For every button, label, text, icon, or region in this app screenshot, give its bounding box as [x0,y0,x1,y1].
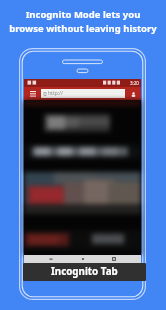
staticText: 3:20 [130,80,139,86]
button[interactable]: Recents [110,255,118,263]
button[interactable]: Home [79,255,87,263]
staticText: Incognito Tab [51,265,118,278]
button[interactable]: http:// [41,89,125,98]
button[interactable]: Account [129,90,137,98]
button[interactable]: Menu [29,90,37,98]
staticText: http:// [48,90,63,97]
button[interactable]: Incognito Tab [23,263,146,281]
button[interactable]: Back [47,255,55,263]
staticText: Incognito Mode lets you browse without l… [0,8,166,34]
